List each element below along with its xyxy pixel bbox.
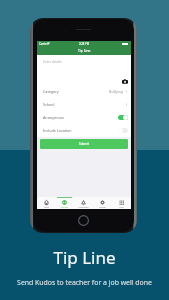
button[interactable]: More: [112, 197, 131, 209]
button[interactable]: Anonymous: [37, 111, 131, 124]
staticText: Settings: [99, 206, 106, 208]
staticText: Send Kudos to teacher for a job well don…: [17, 278, 152, 287]
staticText: Tip Line: [53, 246, 116, 269]
staticText: Enter details: [43, 60, 62, 64]
button[interactable]: Attach photo: [122, 79, 128, 84]
button[interactable]: School: [37, 98, 131, 111]
button[interactable]: Tip Line: [55, 197, 74, 209]
staticText: Category: [43, 89, 59, 94]
staticText: Tip Line: [61, 206, 68, 208]
button[interactable]: Settings: [93, 197, 112, 209]
button[interactable]: Notifications: [74, 197, 93, 209]
staticText: School: [43, 102, 55, 107]
button[interactable]: Include Location: [37, 124, 131, 137]
staticText: Tip Line: [78, 48, 91, 53]
staticText: Anonymous: [43, 115, 64, 120]
button[interactable]: Submit: [40, 139, 128, 149]
staticText: Notifications: [78, 206, 89, 208]
staticText: 2:28 PM: [79, 42, 90, 46]
staticText: Bullying: [109, 89, 123, 94]
staticText: Home: [44, 206, 49, 208]
staticText: More: [119, 206, 124, 208]
button[interactable]: Home: [37, 197, 55, 209]
staticText: Include Location: [43, 128, 72, 133]
button[interactable]: Category: [37, 85, 131, 98]
staticText: Carrier: [39, 42, 48, 46]
staticText: Submit: [79, 142, 90, 146]
